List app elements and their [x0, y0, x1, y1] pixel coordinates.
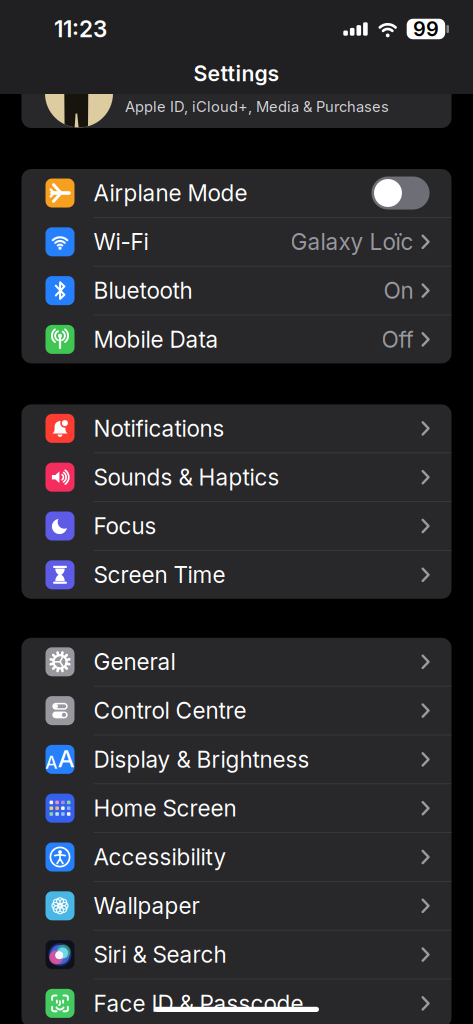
button[interactable]: Siri & Search [21, 931, 451, 979]
staticText: Sounds & Haptics [93, 464, 279, 490]
button[interactable]: Apple ID, iCloud+, Media & Purchases [21, 49, 451, 128]
staticText: Focus [93, 513, 156, 539]
button[interactable]: Accessibility [21, 833, 451, 881]
staticText: Wallpaper [93, 892, 199, 919]
staticText: 11:23 [54, 16, 107, 42]
staticText: Siri & Search [93, 941, 226, 968]
button[interactable]: Notifications [21, 404, 451, 452]
button[interactable]: Focus [21, 502, 451, 550]
button[interactable]: A [21, 735, 451, 783]
staticText: Control Centre [93, 697, 246, 724]
staticText: Face ID & Passcode [93, 990, 303, 1017]
staticText: Airplane Mode [93, 180, 247, 206]
button[interactable]: Airplane Mode [371, 176, 429, 209]
button[interactable]: Wallpaper [21, 882, 451, 930]
button[interactable]: Home Screen [21, 784, 451, 832]
button[interactable]: Bluetooth [21, 267, 451, 315]
button[interactable]: Face ID & Passcode [21, 979, 451, 1024]
button[interactable]: Sounds & Haptics [21, 453, 451, 501]
staticText: Mobile Data [93, 326, 218, 353]
staticText: Off [381, 326, 413, 353]
staticText: General [93, 648, 175, 675]
button[interactable]: General [21, 638, 451, 686]
staticText: Apple ID, iCloud+, Media & Purchases [125, 98, 389, 115]
staticText: Screen Time [93, 561, 225, 588]
staticText: On [383, 277, 413, 304]
staticText: 99 [413, 17, 439, 41]
staticText: Galaxy Loïc [290, 228, 413, 255]
staticText: Wi-Fi [93, 228, 148, 255]
button[interactable]: Mobile Data [21, 315, 451, 363]
staticText: A [45, 752, 57, 772]
button[interactable]: Airplane Mode [21, 169, 451, 217]
button[interactable]: Screen Time [21, 551, 451, 599]
staticText: Accessibility [93, 844, 226, 870]
staticText: A [58, 744, 75, 772]
staticText: Bluetooth [93, 277, 192, 304]
staticText: Settings [193, 61, 279, 86]
staticText: Home Screen [93, 795, 236, 821]
button[interactable]: Control Centre [21, 687, 451, 735]
button[interactable]: Wi-Fi [21, 218, 451, 266]
staticText: Notifications [93, 415, 224, 442]
staticText: Display & Brightness [93, 746, 309, 773]
